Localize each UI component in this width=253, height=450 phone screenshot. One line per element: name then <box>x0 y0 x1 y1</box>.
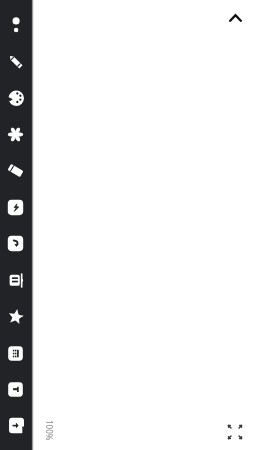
button[interactable]: Smudge <box>0 192 31 222</box>
button[interactable]: Text align <box>0 374 31 404</box>
button[interactable]: Align <box>0 265 31 295</box>
button[interactable]: Brush <box>0 119 31 149</box>
button[interactable]: Stickers <box>0 301 31 331</box>
button[interactable]: Eraser <box>0 155 31 185</box>
button[interactable]: Export <box>0 410 31 440</box>
button[interactable]: More tools <box>0 0 31 38</box>
button[interactable]: Color palette <box>0 82 31 112</box>
button[interactable]: Redo <box>0 228 31 258</box>
staticText: 100% <box>44 420 55 441</box>
button[interactable]: Collapse panel <box>226 8 245 27</box>
button[interactable]: Fit to screen <box>225 422 245 442</box>
button[interactable]: Chart <box>0 338 31 368</box>
button[interactable]: Pencil <box>0 46 31 76</box>
